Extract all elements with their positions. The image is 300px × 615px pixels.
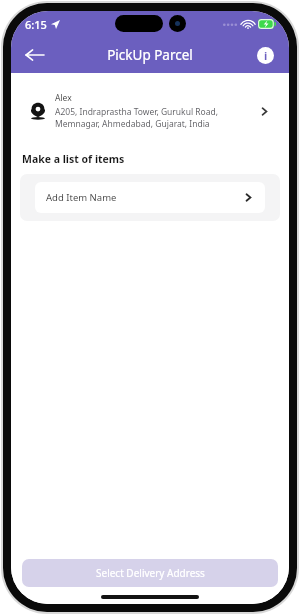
button[interactable]: Back	[17, 38, 51, 72]
button[interactable]: Select Delivery Address	[22, 559, 278, 587]
button[interactable]: Alex	[20, 83, 280, 139]
staticText: i	[264, 48, 268, 63]
staticText: Select Delivery Address	[96, 566, 205, 580]
button[interactable]: Add Item Name	[35, 182, 265, 213]
staticText: 6:15	[25, 17, 47, 32]
staticText: A205, Indraprastha Tower, Gurukul Road, …	[55, 106, 219, 130]
staticText: Add Item Name	[46, 191, 243, 204]
staticText: Alex	[55, 92, 72, 104]
staticText: Make a list of items	[22, 152, 125, 166]
button[interactable]: Information	[251, 41, 279, 69]
staticText: PickUp Parcel	[107, 46, 193, 64]
